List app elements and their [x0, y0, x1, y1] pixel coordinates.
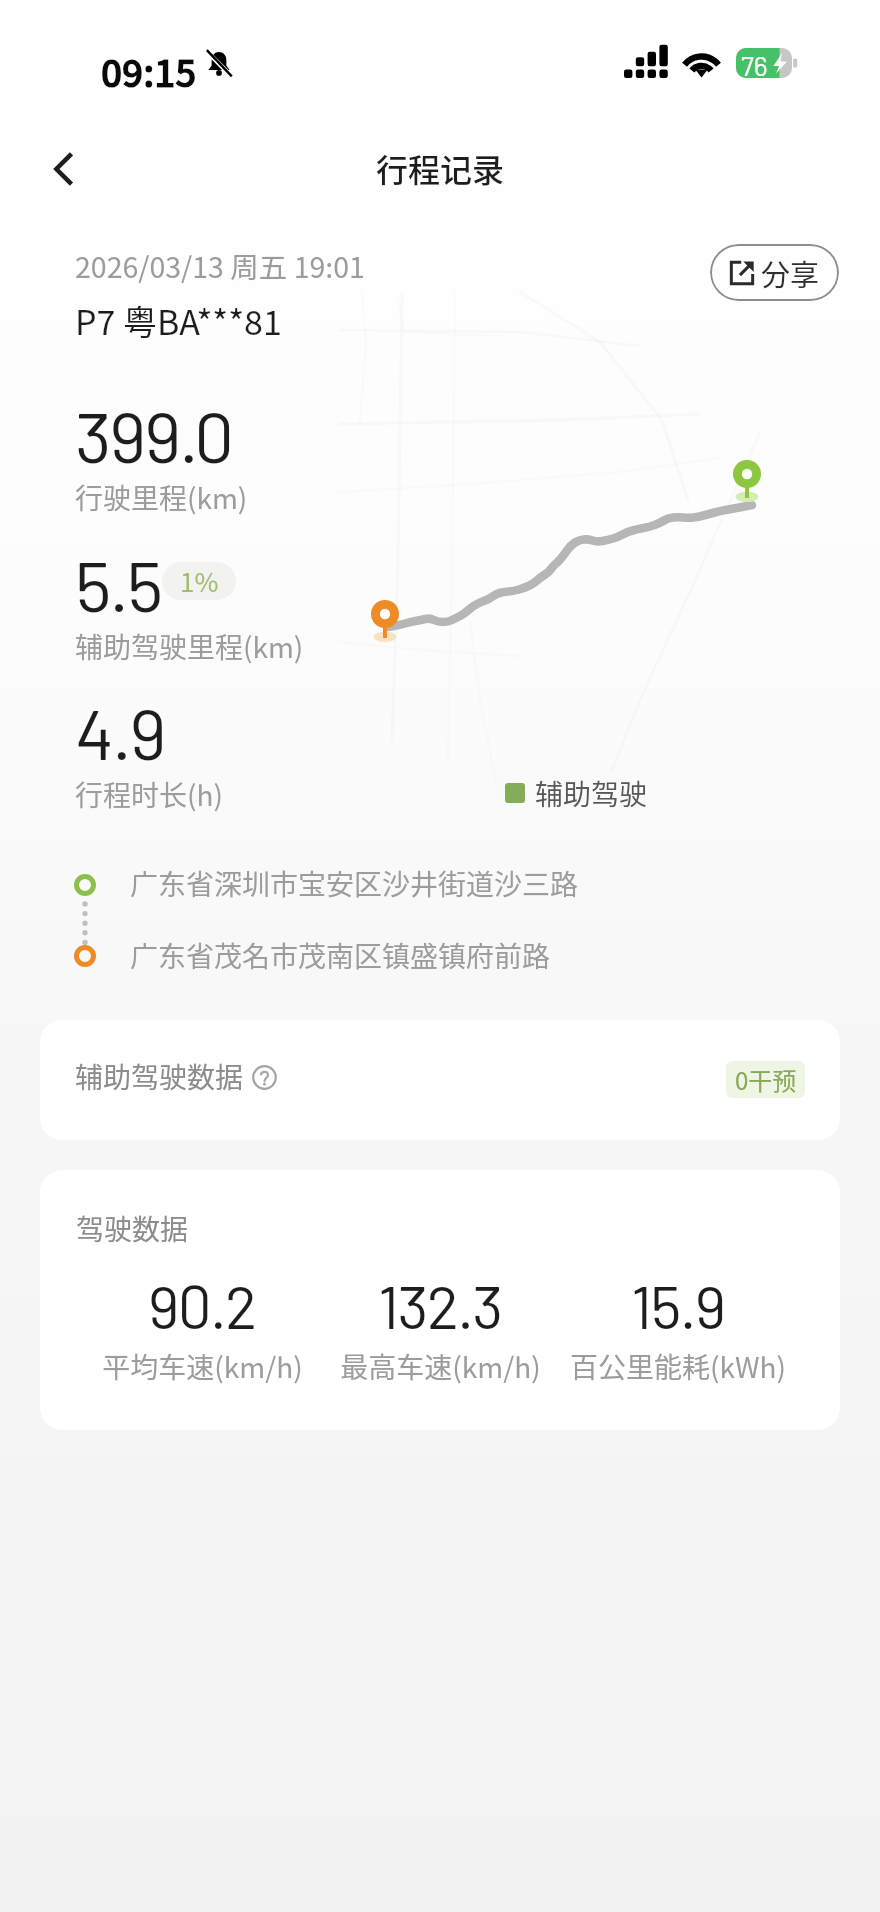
staticText: 广东省深圳市宝安区沙井街道沙三路 [130, 863, 579, 904]
staticText: P7 粤BA***81 [75, 296, 282, 345]
staticText: 132.3 [378, 1269, 502, 1341]
staticText: 09:15 [101, 44, 197, 98]
staticText: 最高车速(km/h) [340, 1346, 541, 1387]
staticText: 辅助驾驶 [535, 773, 648, 814]
staticText: 4.9 [75, 689, 165, 774]
staticText: 399.0 [75, 392, 232, 477]
staticText: 76 [741, 49, 768, 79]
staticText: 行程记录 [376, 145, 505, 191]
staticText: 分享 [761, 252, 820, 294]
staticText: 辅助驾驶里程(km) [75, 626, 304, 667]
staticText: 驾驶数据 [76, 1208, 189, 1249]
staticText: 辅助驾驶数据 [75, 1056, 244, 1097]
button[interactable]: 驾驶数据 [40, 1170, 840, 1430]
button[interactable]: Back [38, 142, 92, 196]
staticText: 5.5 [75, 541, 162, 626]
button[interactable]: 分享 [710, 244, 839, 301]
staticText: 平均车速(km/h) [102, 1346, 303, 1387]
staticText: 1% [180, 562, 219, 600]
staticText: 15.9 [631, 1269, 725, 1341]
staticText: 行程时长(h) [75, 774, 223, 815]
staticText: 行驶里程(km) [75, 477, 248, 518]
staticText: 90.2 [148, 1269, 256, 1341]
staticText: 0干预 [735, 1062, 797, 1097]
staticText: 2026/03/13 周五 19:01 [75, 245, 365, 286]
staticText: 广东省茂名市茂南区镇盛镇府前路 [130, 935, 551, 976]
button[interactable]: 辅助驾驶数据 [40, 1020, 840, 1140]
staticText: 百公里能耗(kWh) [570, 1346, 786, 1387]
